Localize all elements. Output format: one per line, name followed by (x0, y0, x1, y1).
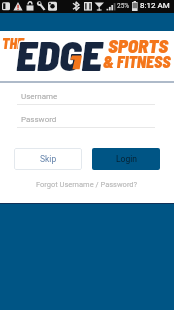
staticText: EDGE (17, 28, 103, 78)
staticText: 8:12 AM (140, 1, 170, 10)
staticText: EDGE (16, 30, 102, 80)
staticText: EDGE (15, 28, 101, 78)
staticText: Skip (40, 154, 57, 164)
staticText: EDGE (15, 29, 101, 79)
staticText: & FITNESS (103, 52, 171, 71)
staticText: SPORTS (108, 34, 168, 57)
staticText: Forgot Username / Password? (36, 180, 138, 189)
staticText: Password (21, 115, 57, 124)
staticText: EDGE (17, 30, 103, 80)
button[interactable]: Login (92, 148, 160, 170)
staticText: Username (21, 92, 58, 101)
staticText: EDGE (15, 30, 101, 80)
staticText: THE (2, 35, 24, 52)
button[interactable]: Forgot Username / Password? (0, 177, 174, 192)
staticText: EDGE (16, 29, 102, 79)
staticText: Login (116, 154, 137, 164)
button[interactable]: Skip (14, 148, 82, 170)
staticText: EDGE (17, 29, 103, 79)
staticText: EDGE (16, 28, 102, 78)
staticText: 25% (117, 2, 130, 10)
